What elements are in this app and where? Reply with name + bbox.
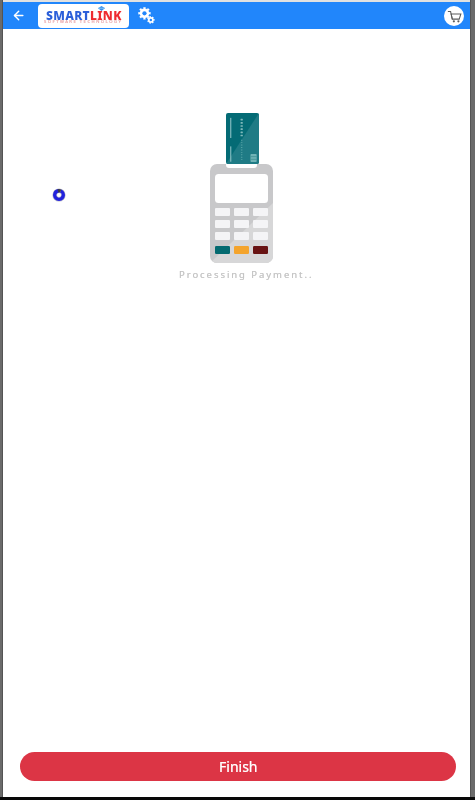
button[interactable]: Cart bbox=[444, 6, 464, 26]
button[interactable]: Settings bbox=[134, 5, 156, 27]
button[interactable]: Finish bbox=[20, 752, 456, 781]
staticText: SMART bbox=[46, 7, 90, 23]
button[interactable]: SMART bbox=[38, 4, 129, 28]
staticText: Finish bbox=[219, 757, 258, 776]
staticText: LINK bbox=[90, 7, 122, 23]
staticText: SOFTWARE TECHNOLOGY bbox=[44, 19, 123, 25]
button[interactable]: Back bbox=[3, 2, 38, 29]
staticText: Processing Payment.. bbox=[179, 268, 314, 281]
